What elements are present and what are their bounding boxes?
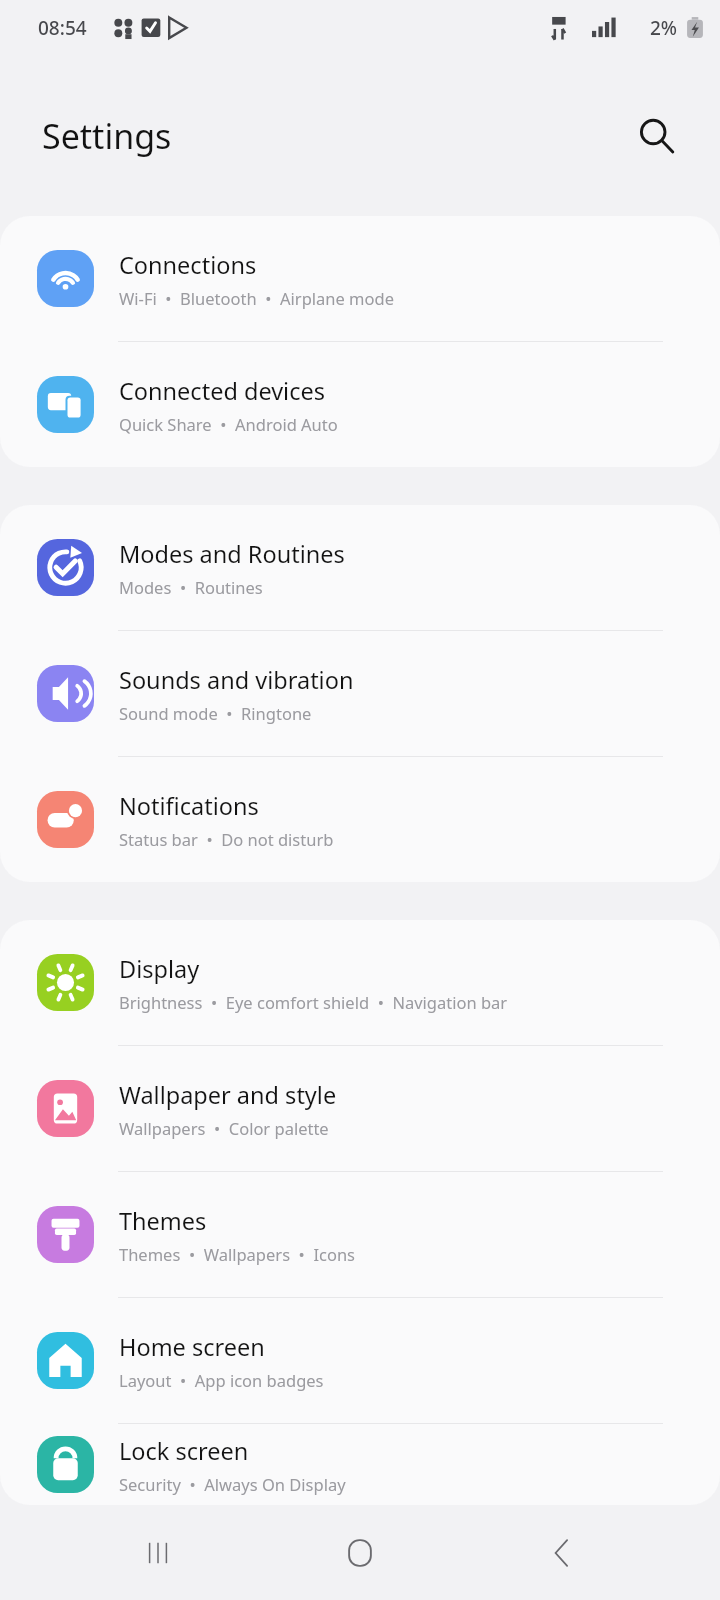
staticText: Lock screen (119, 1435, 249, 1467)
button[interactable]: Lock screen (0, 1424, 720, 1505)
button[interactable]: Modes and Routines (0, 505, 720, 631)
staticText: Wallpaper and style (119, 1079, 337, 1111)
button[interactable]: Sounds and vibration (0, 631, 720, 757)
staticText: Display (119, 953, 200, 985)
button[interactable]: Recent apps (118, 1513, 198, 1593)
button[interactable]: Search (626, 106, 686, 166)
staticText: Brightness • Eye comfort shield • Naviga… (119, 991, 508, 1013)
button[interactable]: Connections (0, 216, 720, 342)
staticText: Quick Share • Android Auto (119, 413, 338, 435)
staticText: Settings (42, 113, 172, 159)
staticText: Sounds and vibration (119, 664, 354, 696)
staticText: Themes • Wallpapers • Icons (119, 1243, 355, 1265)
staticText: 2% (650, 15, 678, 41)
button[interactable]: Themes (0, 1172, 720, 1298)
staticText: Security • Always On Display (119, 1473, 346, 1495)
staticText: Status bar • Do not disturb (119, 828, 334, 850)
staticText: Sound mode • Ringtone (119, 702, 312, 724)
button[interactable]: Back (522, 1513, 602, 1593)
button[interactable]: Display (0, 920, 720, 1046)
staticText: Modes and Routines (119, 538, 345, 570)
button[interactable]: Notifications (0, 757, 720, 882)
staticText: Wallpapers • Color palette (119, 1117, 329, 1139)
button[interactable]: Home screen (0, 1298, 720, 1424)
button[interactable]: Wallpaper and style (0, 1046, 720, 1172)
button[interactable]: Connected devices (0, 342, 720, 467)
staticText: Home screen (119, 1331, 265, 1363)
staticText: Wi-Fi • Bluetooth • Airplane mode (119, 287, 394, 309)
button[interactable]: Home (320, 1513, 400, 1593)
staticText: Notifications (119, 790, 259, 822)
staticText: Modes • Routines (119, 576, 263, 598)
staticText: 08:54 (38, 15, 87, 41)
staticText: Themes (119, 1205, 207, 1237)
staticText: Connections (119, 249, 257, 281)
staticText: Connected devices (119, 375, 325, 407)
staticText: Layout • App icon badges (119, 1369, 324, 1391)
